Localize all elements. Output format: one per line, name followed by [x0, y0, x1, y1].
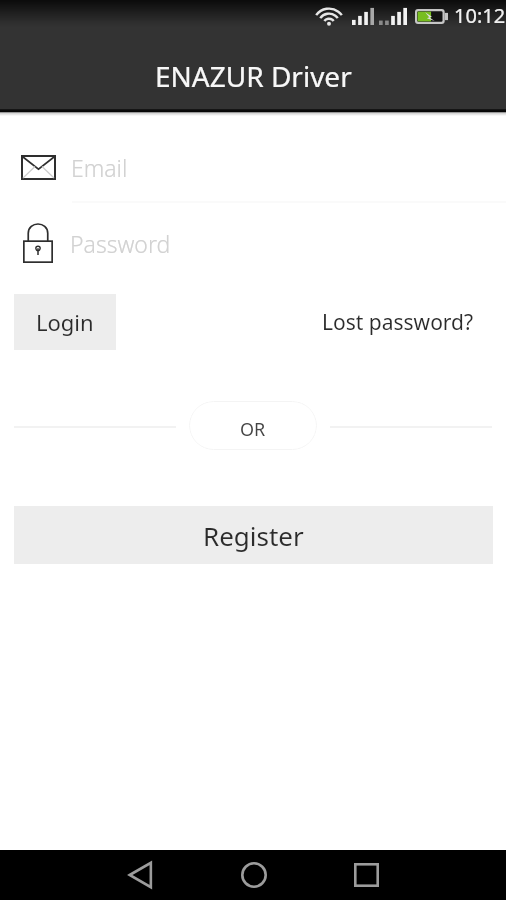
- staticText: Password: [70, 228, 171, 259]
- staticText: Lost password?: [322, 308, 474, 337]
- button[interactable]: Register: [14, 506, 493, 564]
- button[interactable]: Home: [213, 850, 294, 900]
- button[interactable]: Back: [100, 850, 180, 900]
- staticText: ENAZUR Driver: [155, 57, 352, 95]
- staticText: Email: [71, 152, 128, 183]
- button[interactable]: Login: [14, 294, 116, 350]
- button[interactable]: Recents: [326, 850, 406, 900]
- button[interactable]: Lost password?: [318, 300, 478, 344]
- staticText: Login: [36, 307, 94, 337]
- button[interactable]: OR: [189, 401, 317, 450]
- staticText: OR: [240, 417, 266, 442]
- staticText: 10:12: [454, 2, 506, 29]
- button[interactable]: Email input field: [0, 138, 506, 196]
- button[interactable]: Password input field: [0, 214, 506, 272]
- staticText: Register: [203, 518, 304, 553]
